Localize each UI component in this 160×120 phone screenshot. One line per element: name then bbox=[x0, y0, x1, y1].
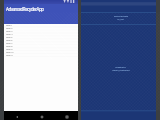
button[interactable]: Item 10 bbox=[4, 51, 78, 54]
button[interactable]: Home bbox=[38, 113, 45, 120]
button[interactable]: Item 1 bbox=[4, 24, 78, 27]
button[interactable]: Item 2 bbox=[4, 27, 78, 30]
staticText: RecyclerView bbox=[114, 15, 128, 18]
button[interactable]: Item 4 bbox=[4, 33, 78, 36]
staticText: demo_fragment bbox=[112, 69, 130, 72]
button[interactable]: Item 5 bbox=[4, 36, 78, 39]
staticText: Item 4 bbox=[6, 33, 13, 36]
staticText: Item 7 bbox=[6, 42, 13, 45]
button[interactable]: Item 7 bbox=[4, 42, 78, 45]
button[interactable]: Recent apps bbox=[63, 113, 70, 120]
button[interactable]: Item 3 bbox=[4, 30, 78, 33]
staticText: rv_list bbox=[117, 18, 124, 21]
staticText: Item 9 bbox=[6, 48, 13, 51]
staticText: Item 2 bbox=[6, 27, 13, 30]
staticText: Item 11 bbox=[6, 54, 14, 57]
button[interactable]: Back bbox=[13, 113, 20, 120]
button[interactable]: Item 11 bbox=[4, 54, 78, 57]
staticText: Item 8 bbox=[6, 45, 13, 48]
staticText: Item 6 bbox=[6, 39, 13, 42]
staticText: Item 3 bbox=[6, 30, 13, 33]
button[interactable]: Item 8 bbox=[4, 45, 78, 48]
staticText: AdvancedRecyclerApp bbox=[6, 6, 44, 12]
staticText: Item 5 bbox=[6, 36, 13, 39]
button[interactable]: Item 9 bbox=[4, 48, 78, 51]
staticText: Item 1 bbox=[6, 24, 13, 27]
button[interactable]: Item 6 bbox=[4, 39, 78, 42]
staticText: Item 10 bbox=[6, 51, 14, 54]
staticText: fragment bbox=[115, 66, 126, 69]
